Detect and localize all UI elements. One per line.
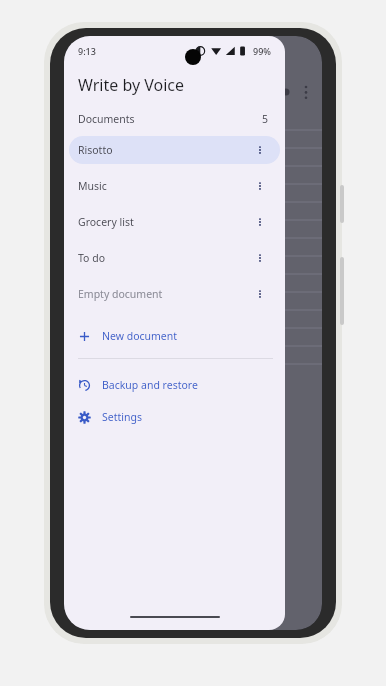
staticText: 9:13 (78, 45, 96, 57)
staticText: Empty document (78, 287, 163, 301)
button[interactable]: More options for Risotto (251, 141, 269, 159)
staticText: Grocery list (78, 215, 134, 229)
staticText: Settings (102, 410, 142, 424)
button[interactable]: Empty document (69, 280, 280, 308)
staticText: 5 (262, 112, 269, 126)
button[interactable]: Backup and restore (69, 371, 280, 399)
button[interactable]: More options for Empty document (251, 285, 269, 303)
button[interactable]: Grocery list (69, 208, 280, 236)
button[interactable]: Settings (69, 403, 280, 431)
staticText: New document (102, 329, 178, 343)
staticText: Backup and restore (102, 378, 198, 392)
button[interactable]: To do (69, 244, 280, 272)
staticText: To do (78, 251, 105, 265)
button[interactable]: More options for Music (251, 177, 269, 195)
button[interactable]: More options for Grocery list (251, 213, 269, 231)
button[interactable]: Music (69, 172, 280, 200)
button[interactable]: Risotto (69, 136, 280, 164)
staticText: 99% (253, 45, 271, 57)
staticText: Documents (78, 112, 135, 126)
staticText: Risotto (78, 143, 113, 157)
staticText: Write by Voice (78, 74, 185, 96)
button[interactable]: New document (69, 322, 280, 350)
staticText: Music (78, 179, 107, 193)
button[interactable]: More options for To do (251, 249, 269, 267)
